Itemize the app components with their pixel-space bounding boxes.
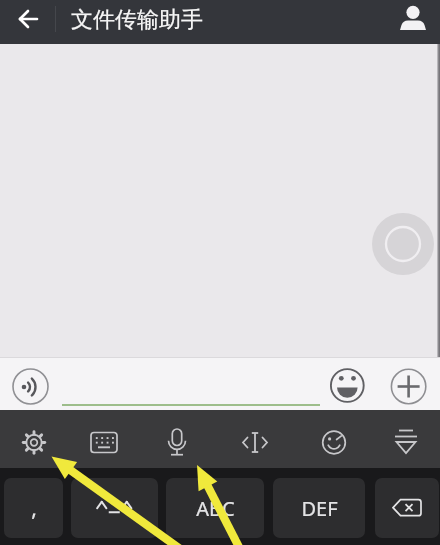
- button[interactable]: [312, 417, 356, 461]
- button[interactable]: [12, 417, 56, 461]
- button[interactable]: [384, 417, 428, 461]
- button[interactable]: DEF: [273, 478, 365, 538]
- button[interactable]: [12, 368, 49, 405]
- button[interactable]: [82, 417, 126, 461]
- button[interactable]: [8, 0, 50, 44]
- staticText: DEF: [301, 495, 338, 522]
- button[interactable]: [330, 368, 365, 403]
- button[interactable]: [233, 417, 277, 461]
- button[interactable]: [71, 478, 158, 538]
- button[interactable]: [395, 0, 440, 44]
- staticText: 文件传输助手: [71, 6, 203, 34]
- button[interactable]: ABC: [166, 478, 264, 538]
- staticText: ,: [31, 494, 37, 523]
- button[interactable]: [155, 417, 199, 461]
- staticText: ABC: [196, 495, 235, 522]
- button[interactable]: [391, 368, 427, 404]
- button[interactable]: ,: [4, 478, 63, 538]
- button[interactable]: [375, 478, 439, 538]
